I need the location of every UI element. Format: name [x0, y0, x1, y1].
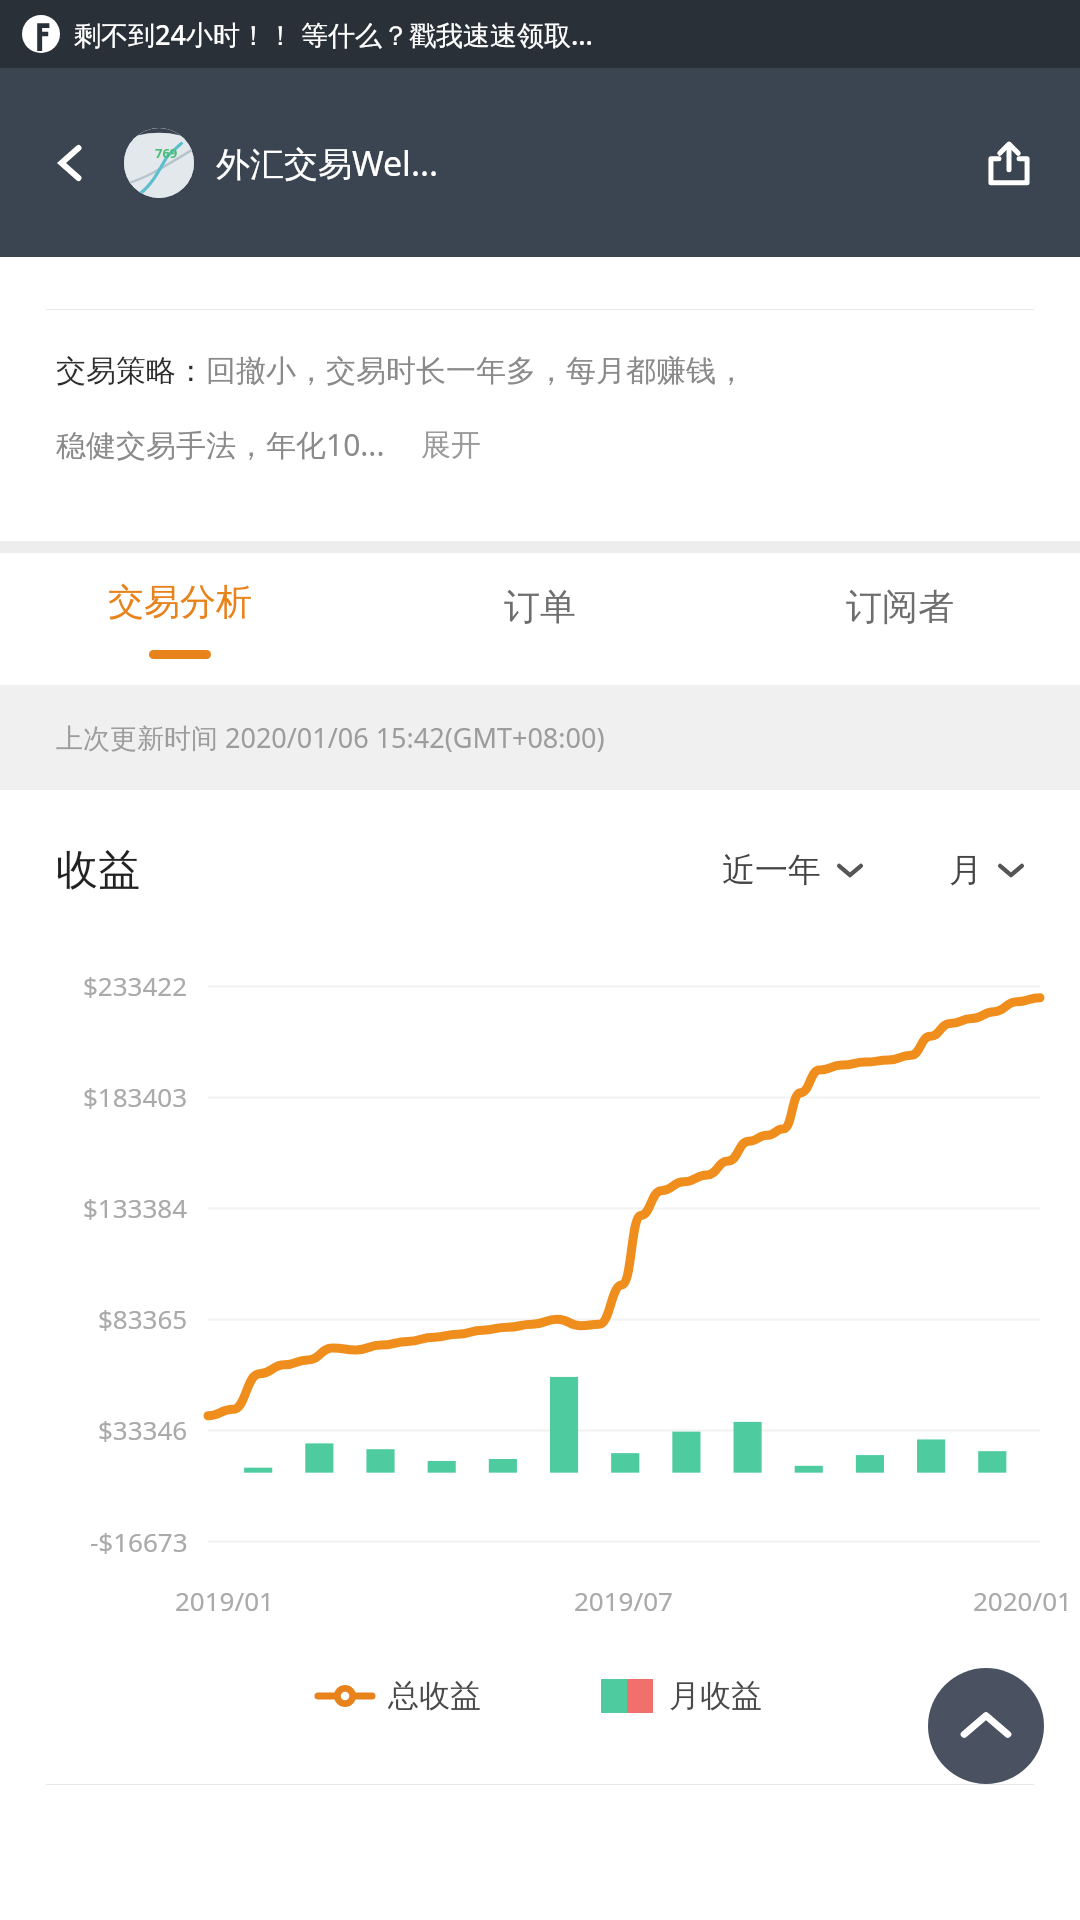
staticText: 订阅者: [846, 584, 954, 629]
staticText: 2019/07: [574, 1583, 673, 1618]
staticText: 2019/01: [175, 1583, 274, 1618]
button[interactable]: 交易分析: [0, 553, 360, 685]
staticText: 月: [949, 849, 982, 891]
staticText: 外汇交易Wel...: [216, 140, 439, 186]
button[interactable]: 月收益: [601, 1676, 762, 1715]
button[interactable]: 剩不到24小时！！ 等什么？戳我速速领取...: [0, 0, 1080, 68]
button[interactable]: Share: [978, 132, 1040, 194]
staticText: 2020/01: [973, 1583, 1072, 1618]
staticText: 展开: [421, 426, 481, 464]
staticText: 近一年: [722, 849, 821, 891]
staticText: -$16673: [90, 1524, 188, 1559]
staticText: 总收益: [388, 1676, 481, 1715]
staticText: 收益: [56, 844, 140, 897]
staticText: $33346: [98, 1412, 188, 1447]
staticText: $233422: [83, 968, 188, 1003]
button[interactable]: 展开: [421, 426, 481, 464]
button[interactable]: Back: [40, 132, 102, 194]
button[interactable]: 订单: [360, 553, 720, 685]
staticText: 上次更新时间 2020/01/06 15:42(GMT+08:00): [56, 719, 605, 756]
staticText: 剩不到24小时！！ 等什么？戳我速速领取...: [74, 16, 593, 53]
staticText: $83365: [98, 1301, 188, 1336]
staticText: 月收益: [669, 1676, 762, 1715]
button[interactable]: 订阅者: [720, 553, 1080, 685]
button[interactable]: 交易策略：: [56, 352, 1024, 390]
button[interactable]: 总收益: [318, 1676, 481, 1715]
button[interactable]: 近一年: [722, 849, 863, 891]
staticText: 稳健交易手法，年化10...: [56, 424, 385, 465]
staticText: 订单: [504, 584, 576, 629]
staticText: 回撤小，交易时长一年多，每月都赚钱，: [206, 352, 746, 390]
staticText: $183403: [83, 1079, 188, 1114]
button[interactable]: Scroll to top: [928, 1668, 1044, 1784]
staticText: 交易分析: [108, 579, 252, 624]
staticText: 769: [155, 144, 178, 162]
button[interactable]: 月: [949, 849, 1024, 891]
staticText: 交易策略：: [56, 352, 206, 390]
staticText: $133384: [83, 1190, 188, 1225]
